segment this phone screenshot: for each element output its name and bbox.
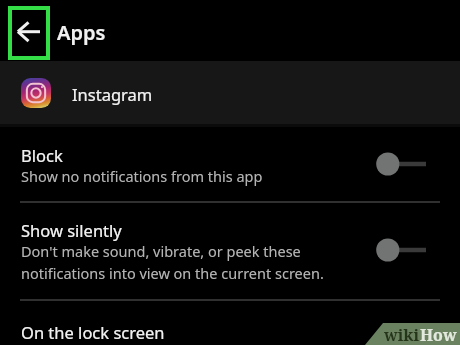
- button[interactable]: Block: [0, 131, 460, 201]
- staticText: notifications into view on the current s…: [21, 263, 324, 283]
- staticText: Apps: [57, 19, 106, 46]
- button[interactable]: On the lock screen: [0, 301, 460, 345]
- button[interactable]: Toggle: [376, 152, 428, 176]
- staticText: Show no notifications from this app: [21, 166, 263, 186]
- staticText: Block: [21, 144, 63, 166]
- staticText: wiki: [384, 324, 420, 345]
- staticText: Instagram: [72, 83, 153, 105]
- button[interactable]: Toggle: [376, 238, 428, 262]
- staticText: On the lock screen: [21, 321, 165, 343]
- button[interactable]: Instagram: [0, 61, 460, 125]
- staticText: How: [420, 324, 457, 345]
- button[interactable]: Back: [8, 6, 50, 60]
- button[interactable]: Show silently: [0, 203, 460, 299]
- staticText: Show silently: [21, 219, 122, 241]
- staticText: Don't make sound, vibrate, or peek these: [21, 241, 301, 261]
